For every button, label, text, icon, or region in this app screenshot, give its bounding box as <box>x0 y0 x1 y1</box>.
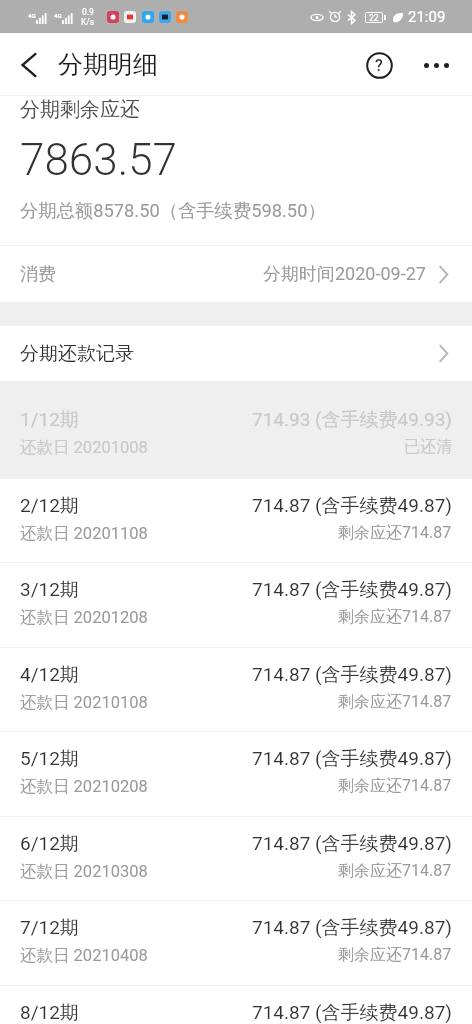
staticText: 714.93 (含手续费49.93) <box>252 408 452 432</box>
staticText: 7/12期 <box>20 916 79 940</box>
staticText: 已还清 <box>404 437 452 457</box>
button[interactable]: Help <box>357 43 401 87</box>
button[interactable]: 1/12期 <box>0 393 472 479</box>
staticText: 还款日 20201208 <box>20 607 148 628</box>
button[interactable]: Back <box>6 42 52 88</box>
staticText: 714.87 (含手续费49.87) <box>252 916 452 940</box>
staticText: 分期明细 <box>58 49 158 80</box>
staticText: 剩余应还714.87 <box>338 607 452 627</box>
staticText: 22 <box>369 13 379 22</box>
staticText: 4G <box>28 12 36 19</box>
staticText: 3/12期 <box>20 578 79 602</box>
staticText: 还款日 20201108 <box>20 523 148 544</box>
staticText: 5/12期 <box>20 747 79 771</box>
staticText: 分期剩余应还 <box>20 97 140 122</box>
staticText: 还款日 20210108 <box>20 692 148 713</box>
button[interactable]: 5/12期 <box>0 732 472 817</box>
staticText: 剩余应还714.87 <box>338 523 452 543</box>
button[interactable]: 8/12期 <box>0 986 472 1024</box>
staticText: 消费 <box>20 263 56 286</box>
button[interactable]: 2/12期 <box>0 479 472 563</box>
staticText: 714.87 (含手续费49.87) <box>252 663 452 687</box>
staticText: 21:09 <box>408 8 446 26</box>
button[interactable]: 6/12期 <box>0 817 472 901</box>
button[interactable]: 7/12期 <box>0 901 472 986</box>
staticText: 剩余应还714.87 <box>338 945 452 965</box>
staticText: 剩余应还714.87 <box>338 861 452 881</box>
staticText: 分期时间2020-09-27 <box>263 263 426 286</box>
staticText: 714.87 (含手续费49.87) <box>252 494 452 518</box>
staticText: ? <box>375 56 383 75</box>
staticText: 还款日 20210408 <box>20 945 148 966</box>
staticText: 剩余应还714.87 <box>338 692 452 712</box>
staticText: 2/12期 <box>20 494 79 518</box>
staticText: 还款日 20201008 <box>20 437 148 458</box>
staticText: 1/12期 <box>20 408 79 432</box>
staticText: 分期还款记录 <box>20 342 134 366</box>
staticText: K/s <box>81 17 95 27</box>
staticText: 714.87 (含手续费49.87) <box>252 747 452 771</box>
button[interactable]: 3/12期 <box>0 563 472 648</box>
staticText: 0.9 <box>82 7 94 17</box>
staticText: 剩余应还714.87 <box>338 776 452 796</box>
staticText: 还款日 20210308 <box>20 861 148 882</box>
staticText: 4/12期 <box>20 663 79 687</box>
button[interactable]: 分期还款记录 <box>0 326 472 381</box>
staticText: 714.87 (含手续费49.87) <box>252 578 452 602</box>
button[interactable]: More options <box>414 43 458 87</box>
staticText: 8/12期 <box>20 1001 79 1024</box>
staticText: 分期总额8578.50（含手续费598.50） <box>20 199 326 222</box>
staticText: 4G <box>54 12 62 19</box>
staticText: 还款日 20210208 <box>20 776 148 797</box>
staticText: 714.87 (含手续费49.87) <box>252 1001 452 1024</box>
button[interactable]: 4/12期 <box>0 648 472 732</box>
staticText: 714.87 (含手续费49.87) <box>252 832 452 856</box>
staticText: 7863.57 <box>20 134 177 186</box>
staticText: 6/12期 <box>20 832 79 856</box>
button[interactable]: 消费 <box>0 246 472 302</box>
